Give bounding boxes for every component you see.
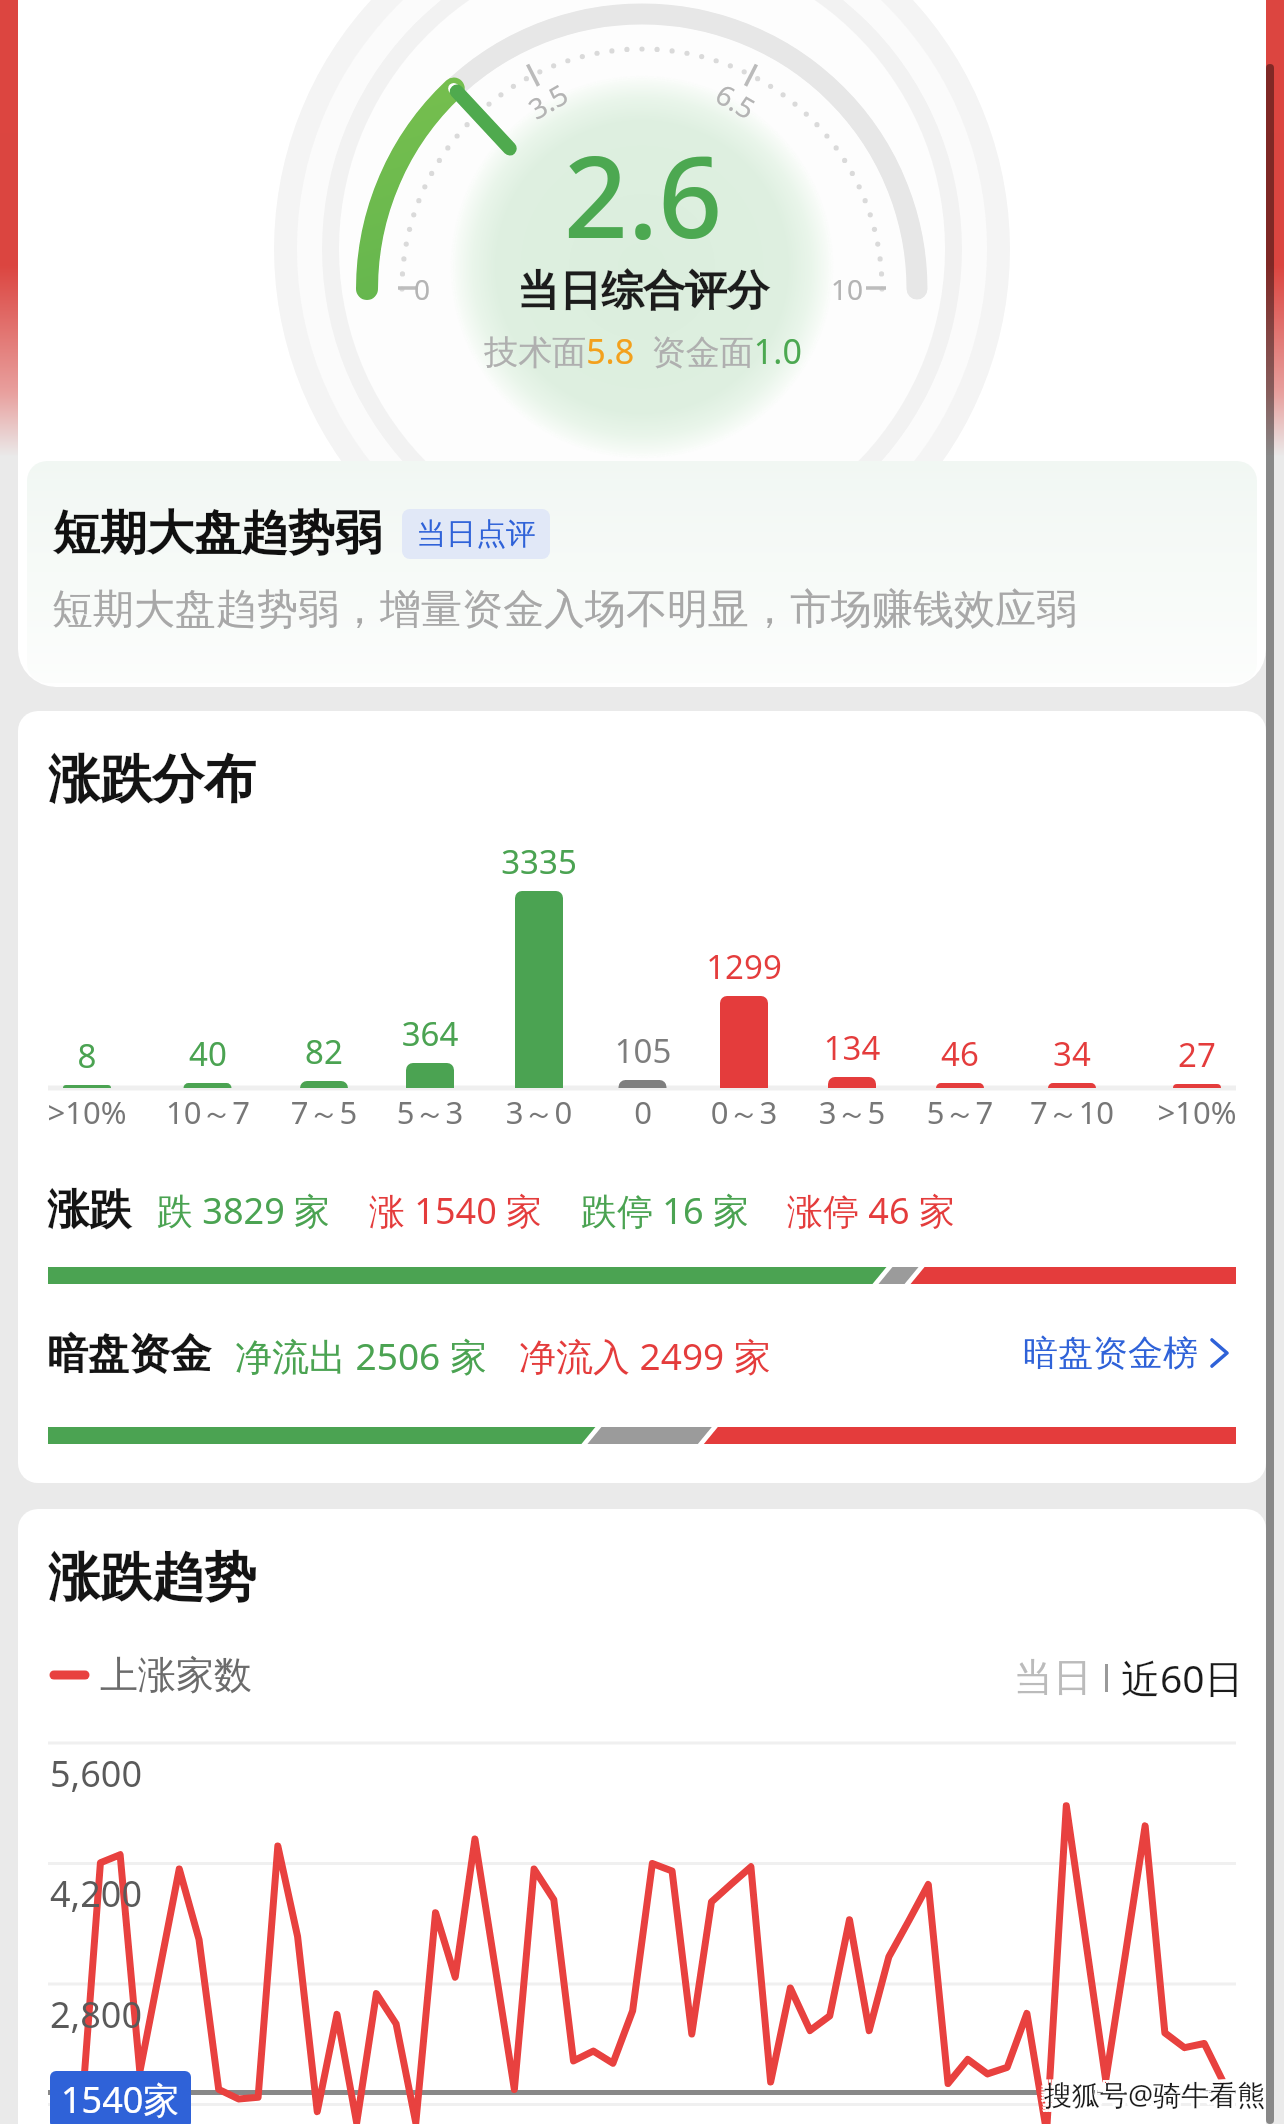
staticText: 34 xyxy=(1002,1031,1142,1076)
staticText: 搜狐号@骑牛看熊 xyxy=(1041,2072,1263,2110)
staticText: 搜狐号@骑牛看熊 xyxy=(1047,2075,1266,2113)
staticText: 82 xyxy=(254,1029,394,1074)
button[interactable]: 当日 xyxy=(1014,1651,1244,1704)
staticText: 6.5 xyxy=(709,74,763,127)
staticText: 搜狐号@骑牛看熊 xyxy=(1044,2072,1266,2110)
staticText: 搜狐号@骑牛看熊 xyxy=(1041,2075,1263,2113)
staticText: 3335 xyxy=(469,839,609,884)
staticText: 40 xyxy=(138,1031,278,1076)
staticText: 8 xyxy=(18,1033,157,1078)
staticText: 搜狐号@骑牛看熊 xyxy=(1047,2072,1266,2110)
staticText: 46 xyxy=(890,1031,1030,1076)
staticText: 搜狐号@骑牛看熊 xyxy=(1044,2078,1266,2116)
staticText: 短期大盘趋势弱 xyxy=(53,504,382,563)
staticText: 涨 1540 家 xyxy=(369,1186,543,1235)
staticText: 10～7 xyxy=(138,1091,278,1133)
staticText: 涨跌分布 xyxy=(48,747,256,813)
staticText: 5～7 xyxy=(890,1091,1030,1133)
staticText: 3.5 xyxy=(521,74,575,127)
staticText: 3～0 xyxy=(469,1091,609,1133)
staticText: 10 xyxy=(831,270,864,308)
button[interactable]: 上涨家数 xyxy=(54,1651,252,1699)
staticText: 涨跌趋势 xyxy=(48,1545,256,1611)
staticText: 搜狐号@骑牛看熊 xyxy=(1047,2078,1266,2116)
staticText: 105 xyxy=(573,1028,713,1073)
staticText: 5～3 xyxy=(360,1091,500,1133)
staticText: 跌 3829 家 xyxy=(157,1186,331,1235)
staticText: 1299 xyxy=(674,944,814,989)
button[interactable]: 短期大盘趋势弱 xyxy=(27,461,1257,683)
staticText: 近60日 xyxy=(1121,1651,1244,1704)
staticText: 134 xyxy=(782,1025,922,1070)
staticText: 暗盘资金榜 xyxy=(1023,1331,1198,1375)
staticText: 涨跌 xyxy=(47,1184,131,1237)
staticText: 5,600 xyxy=(50,1749,143,1798)
staticText: 当日点评 xyxy=(416,515,536,553)
staticText: 4,200 xyxy=(50,1869,143,1918)
staticText: 0～3 xyxy=(674,1091,814,1133)
staticText: 上涨家数 xyxy=(100,1651,252,1699)
button[interactable]: 暗盘资金榜 xyxy=(1023,1331,1233,1375)
staticText: 暗盘资金 xyxy=(47,1329,211,1381)
staticText: 3～5 xyxy=(782,1091,922,1133)
staticText: 2.6 xyxy=(443,118,843,271)
staticText: 0 xyxy=(573,1091,713,1133)
staticText: 技术面5.8 资金面1.0 xyxy=(443,328,843,374)
staticText: 7～10 xyxy=(1002,1091,1142,1133)
staticText: 7～5 xyxy=(254,1091,394,1133)
staticText: 跌停 16 家 xyxy=(581,1186,749,1235)
staticText: 364 xyxy=(360,1011,500,1056)
staticText: >10% xyxy=(1127,1091,1266,1133)
staticText: 净流入 2499 家 xyxy=(519,1330,771,1381)
staticText: 当日 xyxy=(1014,1653,1092,1702)
staticText: 净流出 2506 家 xyxy=(235,1330,487,1381)
staticText: 1540家 xyxy=(61,2075,180,2124)
staticText: 当日综合评分 xyxy=(443,265,843,318)
staticText: 搜狐号@骑牛看熊 xyxy=(1044,2075,1266,2113)
staticText: 27 xyxy=(1127,1032,1266,1077)
staticText: 2,800 xyxy=(50,1990,143,2039)
staticText: 涨停 46 家 xyxy=(787,1186,955,1235)
staticText: 搜狐号@骑牛看熊 xyxy=(1041,2078,1263,2116)
staticText: 0 xyxy=(414,270,431,308)
staticText: 短期大盘趋势弱，增量资金入场不明显，市场赚钱效应弱 xyxy=(52,584,1077,636)
staticText: >10% xyxy=(18,1091,157,1133)
